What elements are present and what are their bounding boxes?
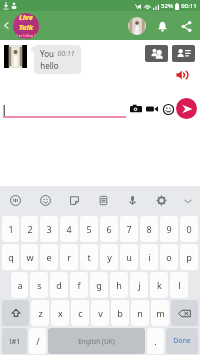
staticText: Free Calling & Chat — [13, 34, 39, 39]
staticText: hello — [40, 60, 59, 71]
button[interactable] — [3, 100, 126, 118]
staticText: j — [138, 279, 141, 291]
staticText: 00:11 — [181, 2, 197, 10]
button[interactable]: r — [60, 244, 78, 270]
button[interactable]: Settings — [147, 186, 176, 215]
button[interactable]: l — [170, 272, 188, 298]
staticText: p — [186, 251, 192, 263]
button[interactable]: x — [51, 300, 69, 326]
staticText: You — [40, 48, 54, 59]
staticText: x — [58, 307, 63, 319]
staticText: 5 — [86, 223, 92, 235]
staticText: 1 — [8, 223, 14, 235]
button[interactable]: Participants — [145, 45, 168, 62]
button[interactable]: c — [71, 300, 89, 326]
button[interactable]: s — [30, 272, 48, 298]
button[interactable]: b — [111, 300, 129, 326]
button[interactable]: p — [180, 244, 198, 270]
button[interactable]: Shift — [2, 300, 29, 326]
button[interactable]: Stickers — [60, 186, 89, 215]
staticText: 00:11 — [57, 49, 75, 59]
button[interactable]: Emoji — [161, 102, 175, 116]
staticText: g — [96, 279, 102, 291]
button[interactable]: Video — [145, 102, 159, 116]
button[interactable]: w — [21, 244, 38, 270]
button[interactable]: Voice input — [118, 186, 147, 215]
button[interactable]: Contact info — [172, 45, 195, 62]
button[interactable]: a — [11, 272, 28, 298]
button[interactable]: 6 — [100, 216, 118, 242]
button[interactable]: t — [80, 244, 98, 270]
button[interactable]: Emoji — [30, 186, 60, 215]
button[interactable]: Live Talk — [13, 13, 39, 39]
button[interactable]: !#1 — [2, 328, 27, 354]
button[interactable]: d — [50, 272, 68, 298]
button[interactable]: j — [130, 272, 148, 298]
button[interactable]: Collapse — [176, 186, 200, 215]
button[interactable]: 9 — [160, 216, 178, 242]
button[interactable]: m — [151, 300, 169, 326]
staticText: s — [37, 279, 42, 291]
staticText: i — [148, 251, 151, 263]
button[interactable]: You — [34, 45, 81, 74]
button[interactable]: 8 — [140, 216, 158, 242]
staticText: t — [87, 251, 91, 263]
staticText: o — [166, 251, 172, 263]
button[interactable]: Search GIF — [0, 186, 30, 215]
staticText: b — [117, 307, 123, 319]
button[interactable]: Profile — [128, 17, 146, 35]
staticText: Done — [173, 336, 191, 346]
button[interactable]: / — [29, 328, 46, 354]
staticText: r — [67, 251, 71, 263]
button[interactable]: 7 — [120, 216, 138, 242]
button[interactable]: v — [91, 300, 109, 326]
button[interactable]: . — [147, 328, 164, 354]
staticText: English (UK) — [78, 337, 115, 346]
button[interactable]: o — [160, 244, 178, 270]
button[interactable]: z — [31, 300, 49, 326]
staticText: z — [38, 307, 43, 319]
button[interactable]: Backspace — [171, 300, 198, 326]
button[interactable]: Camera — [129, 102, 143, 116]
staticText: h — [116, 279, 122, 291]
staticText: 52% — [161, 2, 173, 10]
staticText: m — [156, 307, 165, 319]
button[interactable]: 5 — [80, 216, 98, 242]
staticText: a — [17, 279, 23, 291]
button[interactable]: Share — [179, 19, 194, 34]
button[interactable]: f — [70, 272, 88, 298]
button[interactable]: Back — [0, 11, 13, 40]
button[interactable]: u — [120, 244, 138, 270]
staticText: 3 — [46, 223, 52, 235]
button[interactable]: Clipboard — [89, 186, 118, 215]
staticText: 4 — [66, 223, 72, 235]
button[interactable]: i — [140, 244, 158, 270]
staticText: 2 — [27, 223, 33, 235]
staticText: !#1 — [9, 336, 21, 346]
button[interactable]: 1 — [2, 216, 19, 242]
button[interactable]: 3 — [40, 216, 58, 242]
button[interactable]: g — [90, 272, 108, 298]
button[interactable]: Sound — [174, 67, 189, 82]
staticText: f — [77, 279, 81, 291]
button[interactable]: 4 — [60, 216, 78, 242]
button[interactable]: e — [40, 244, 58, 270]
staticText: n — [137, 307, 143, 319]
button[interactable]: y — [100, 244, 118, 270]
button[interactable]: Notifications — [155, 19, 170, 34]
staticText: c — [78, 307, 83, 319]
staticText: . — [154, 335, 157, 347]
button[interactable]: h — [110, 272, 128, 298]
button[interactable]: English (UK) — [48, 328, 145, 354]
staticText: Live Talk — [13, 13, 39, 33]
button[interactable]: k — [150, 272, 168, 298]
button[interactable]: n — [131, 300, 149, 326]
staticText: 8 — [146, 223, 152, 235]
staticText: 7 — [126, 223, 132, 235]
staticText: 6 — [106, 223, 112, 235]
button[interactable]: 0 — [180, 216, 198, 242]
button[interactable]: 2 — [21, 216, 38, 242]
button[interactable]: Done — [166, 328, 198, 354]
button[interactable]: q — [2, 244, 19, 270]
button[interactable]: Send — [176, 98, 197, 119]
